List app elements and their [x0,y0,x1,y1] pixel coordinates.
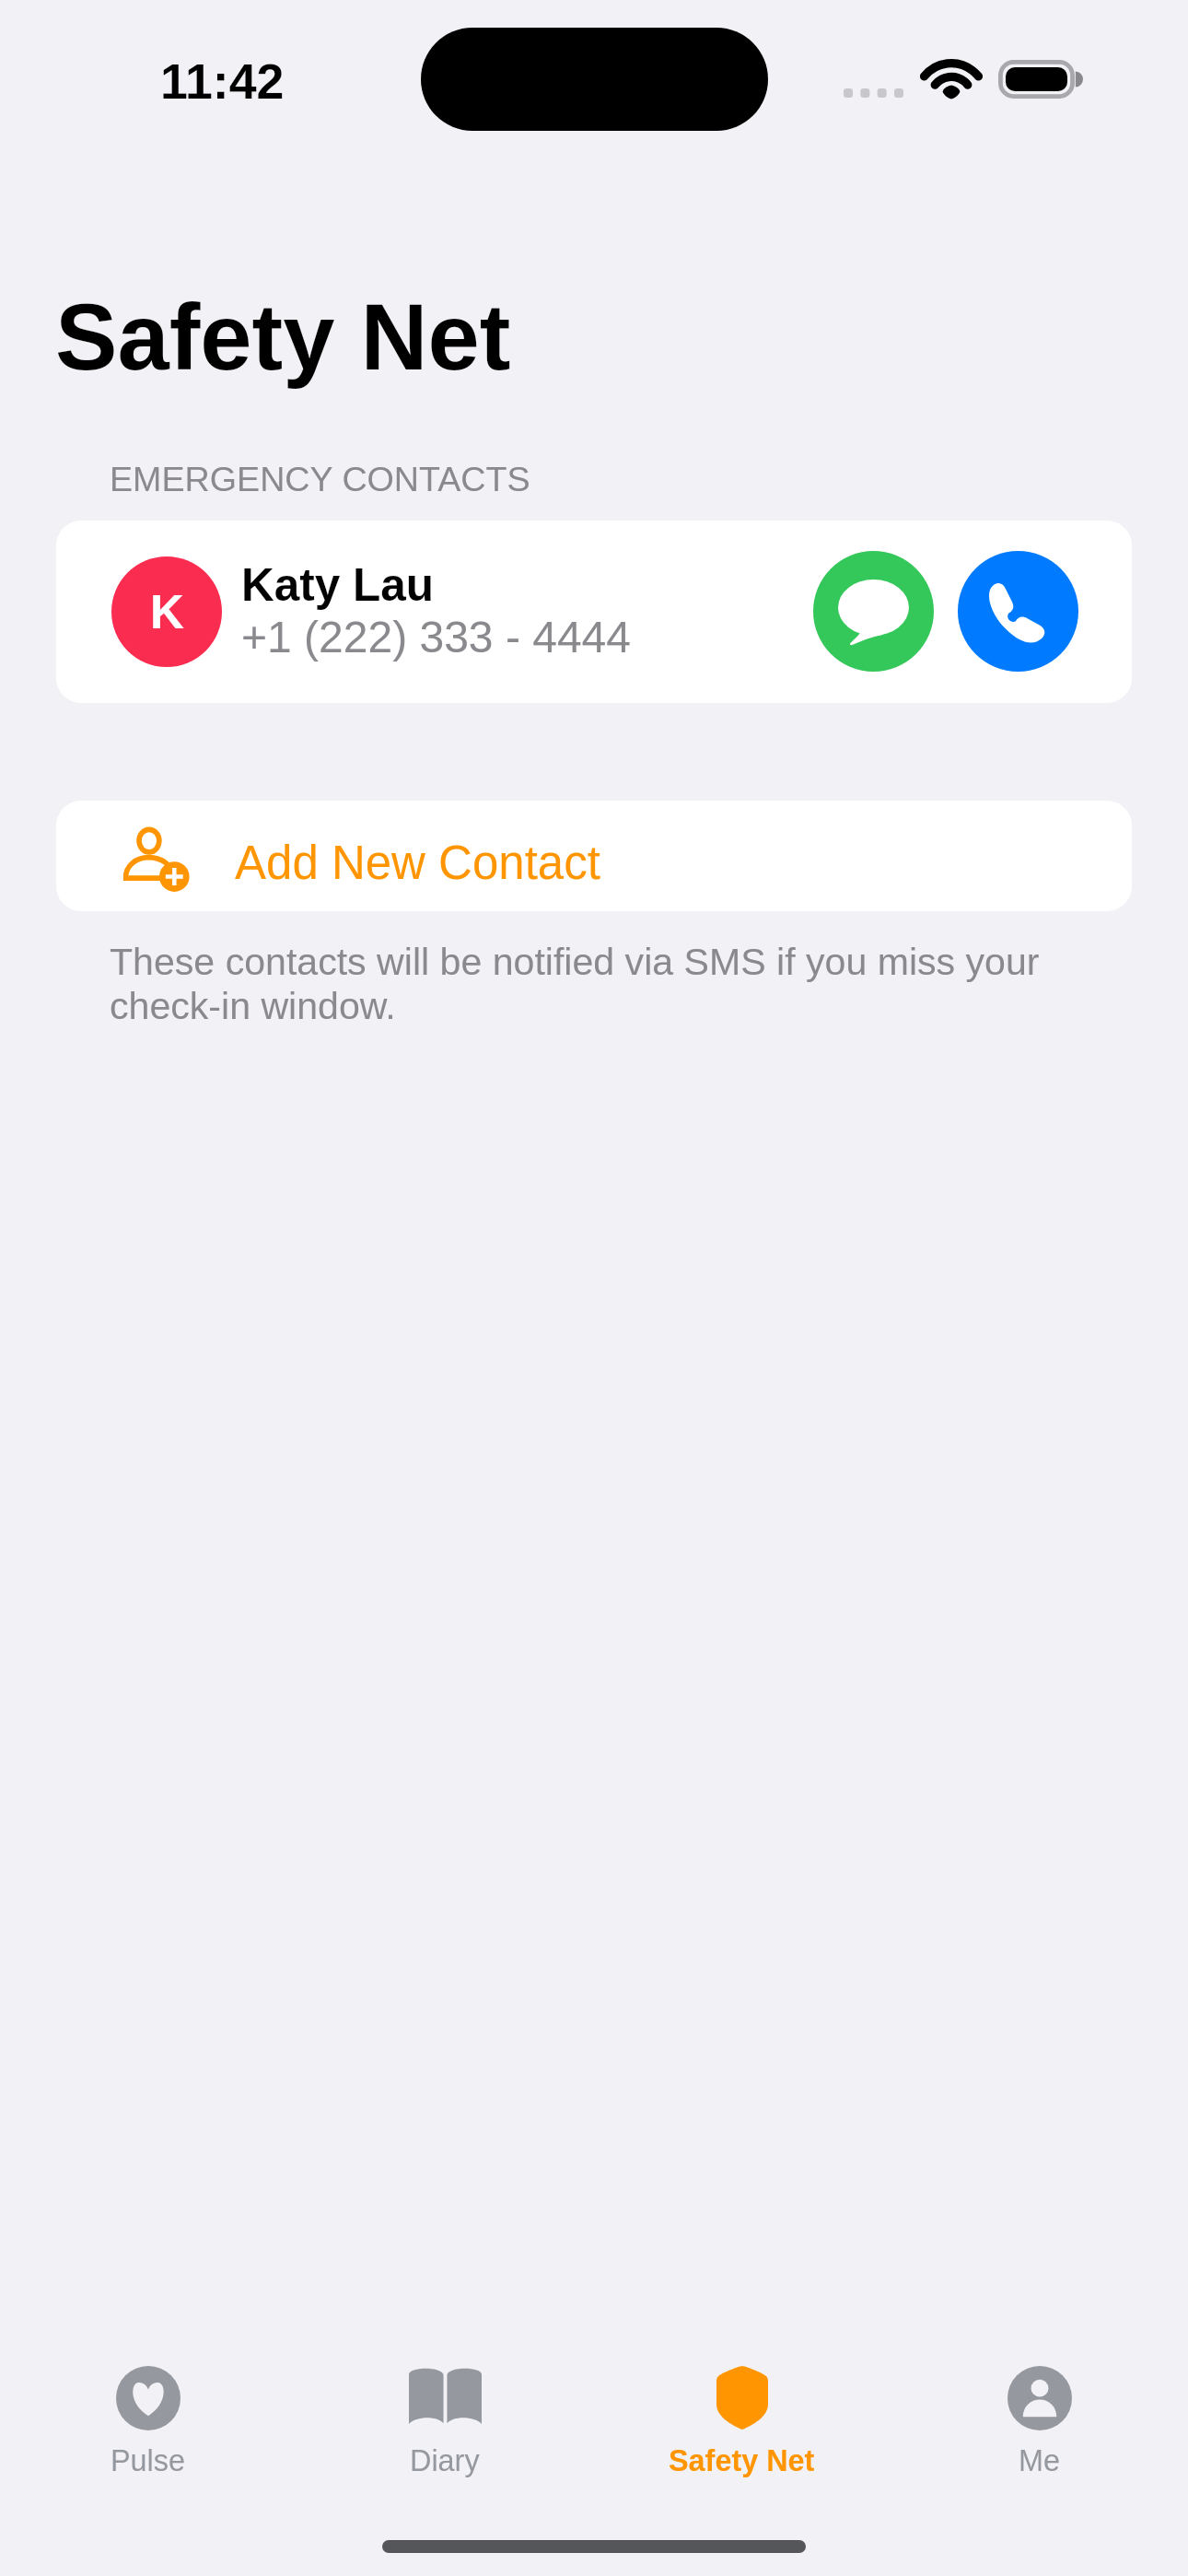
button[interactable]: Call [958,551,1078,672]
staticText: +1 (222) 333 - 4444 [241,613,631,662]
staticText: Add New Contact [235,837,600,889]
staticText: Katy Lau [241,559,435,610]
staticText: Safety Net [669,2444,815,2477]
button[interactable]: K [56,521,1132,703]
staticText: 11:42 [160,53,285,109]
staticText: Diary [410,2444,480,2477]
button[interactable]: Diary [297,2294,593,2516]
button[interactable]: Message [813,551,934,672]
staticText: Me [1019,2444,1060,2477]
staticText: EMERGENCY CONTACTS [110,460,530,498]
button[interactable]: Me [891,2294,1188,2516]
button[interactable]: Safety Net [593,2294,891,2516]
button[interactable]: Add New Contact [56,801,1132,911]
staticText: These contacts will be notified via SMS … [110,941,1050,1026]
button[interactable]: Pulse [0,2294,297,2516]
staticText: Safety Net [55,285,511,389]
staticText: Pulse [111,2444,186,2477]
staticText: K [150,586,184,638]
